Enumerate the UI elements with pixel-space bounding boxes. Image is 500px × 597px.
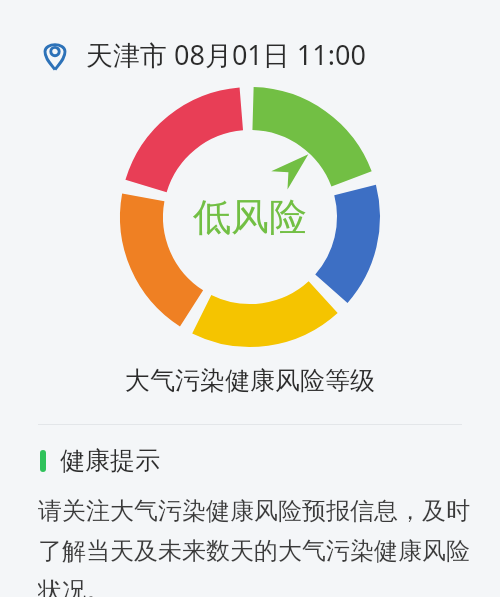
other: Location (38, 38, 72, 72)
staticText: 请关注大气污染健康风险预报信息，及时了解当天及未来数天的大气污染健康风险状况。 (38, 496, 470, 597)
staticText: 天津市 08月01日 11:00 (86, 36, 366, 73)
button[interactable]: Location (38, 36, 480, 73)
staticText: 健康提示 (60, 445, 160, 476)
staticText: 大气污染健康风险等级 (0, 365, 500, 396)
staticText: 低风险 (193, 193, 307, 241)
button[interactable]: 健康提示 (40, 445, 500, 476)
